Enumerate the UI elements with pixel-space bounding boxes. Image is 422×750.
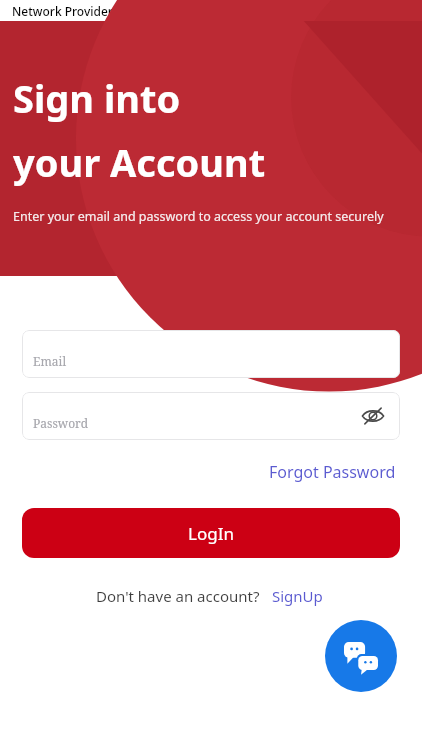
button[interactable]: Show password bbox=[360, 403, 386, 429]
staticText: Network Provider bbox=[12, 3, 113, 19]
button[interactable]: LogIn bbox=[22, 508, 400, 558]
staticText: SignUp bbox=[272, 586, 323, 606]
button[interactable]: SignUp bbox=[269, 584, 326, 608]
button[interactable]: Chat support bbox=[325, 620, 397, 692]
staticText: Sign into bbox=[13, 72, 181, 124]
staticText: Don't have an account? bbox=[96, 586, 260, 606]
button[interactable]: Email bbox=[22, 330, 400, 378]
staticText: LogIn bbox=[188, 522, 234, 545]
button[interactable]: Forgot Password bbox=[265, 458, 400, 486]
staticText: your Account bbox=[13, 136, 266, 188]
staticText: Enter your email and password to access … bbox=[13, 208, 384, 225]
staticText: Forgot Password bbox=[269, 461, 396, 483]
button[interactable]: Password bbox=[22, 392, 400, 440]
staticText: Email bbox=[33, 353, 67, 369]
staticText: Password bbox=[33, 415, 89, 431]
